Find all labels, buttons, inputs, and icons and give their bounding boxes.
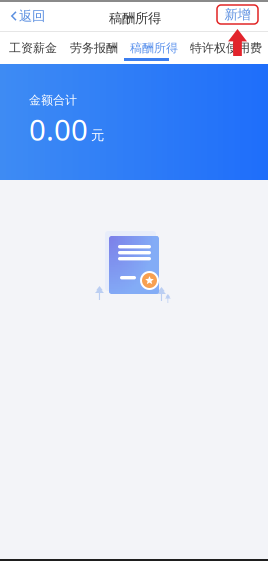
button[interactable]: 劳务报酬 xyxy=(70,36,118,60)
staticText: 返回 xyxy=(19,8,45,24)
button[interactable]: 新增 xyxy=(217,5,258,24)
button[interactable]: 工资薪金 xyxy=(9,36,57,60)
staticText: 工资薪金 xyxy=(9,41,57,55)
button[interactable]: 返回 xyxy=(0,2,53,30)
staticText: 劳务报酬 xyxy=(70,41,118,55)
staticText: 稿酬所得 xyxy=(109,10,161,26)
staticText: 新增 xyxy=(224,6,250,23)
staticText: 元 xyxy=(91,127,104,143)
staticText: 金额合计 xyxy=(29,93,77,108)
staticText: 0.00 xyxy=(29,110,88,149)
button[interactable]: 特许权使用费 xyxy=(190,36,262,60)
button[interactable]: 稿酬所得 xyxy=(130,36,178,60)
staticText: 稿酬所得 xyxy=(130,41,178,55)
staticText: 特许权使用费 xyxy=(190,41,262,55)
